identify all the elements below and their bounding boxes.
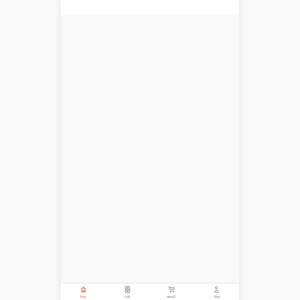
staticText: 我的	[214, 295, 220, 299]
other: Home	[80, 286, 87, 293]
other: Cart	[168, 286, 175, 293]
other: Categories	[124, 286, 131, 293]
other: Account	[213, 286, 220, 293]
button[interactable]: Home	[61, 284, 105, 300]
staticText: 首页	[80, 295, 86, 299]
button[interactable]: Account	[194, 284, 239, 300]
button[interactable]: Categories	[105, 284, 149, 300]
staticText: 分类	[124, 295, 130, 299]
staticText: 购物车	[167, 295, 176, 299]
button[interactable]: Cart	[149, 284, 194, 300]
